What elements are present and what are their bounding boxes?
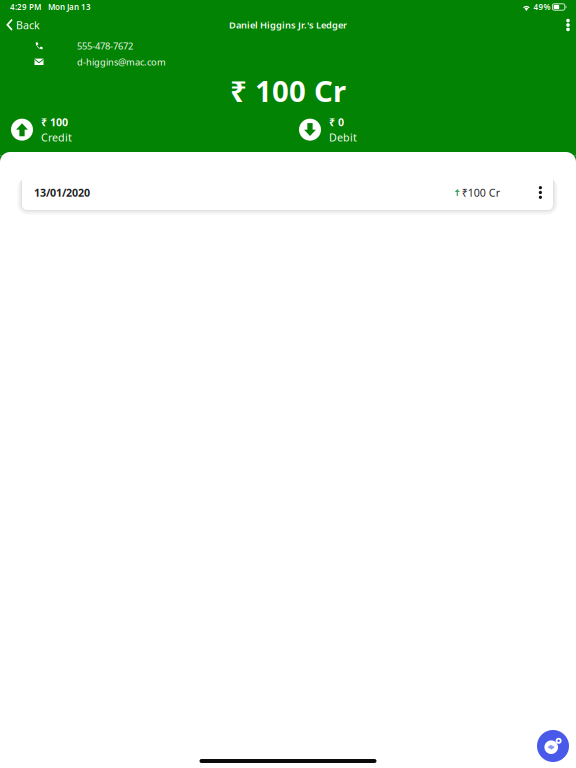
staticText: Daniel Higgins Jr.'s Ledger bbox=[229, 19, 347, 31]
staticText: 555-478-7672 bbox=[77, 40, 133, 52]
staticText: 13/01/2020 bbox=[34, 185, 90, 200]
staticText: 49% bbox=[533, 2, 550, 12]
button[interactable]: Add entry bbox=[537, 730, 569, 762]
button[interactable]: Back bbox=[0, 14, 48, 36]
staticText: ₹ 100 Cr bbox=[230, 71, 346, 110]
staticText: ₹100 Cr bbox=[462, 185, 500, 200]
button[interactable]: More options bbox=[558, 14, 576, 36]
staticText: ₹ 100 bbox=[41, 115, 68, 129]
staticText: ₹ 0 bbox=[329, 115, 344, 129]
staticText: Debit bbox=[329, 130, 357, 144]
staticText: Credit bbox=[41, 130, 72, 144]
button[interactable]: 13/01/2020 bbox=[22, 175, 553, 210]
staticText: d-higgins@mac.com bbox=[77, 56, 166, 68]
staticText: Back bbox=[16, 18, 40, 32]
staticText: Mon Jan 13 bbox=[48, 2, 91, 12]
staticText: 4:29 PM bbox=[10, 2, 41, 12]
